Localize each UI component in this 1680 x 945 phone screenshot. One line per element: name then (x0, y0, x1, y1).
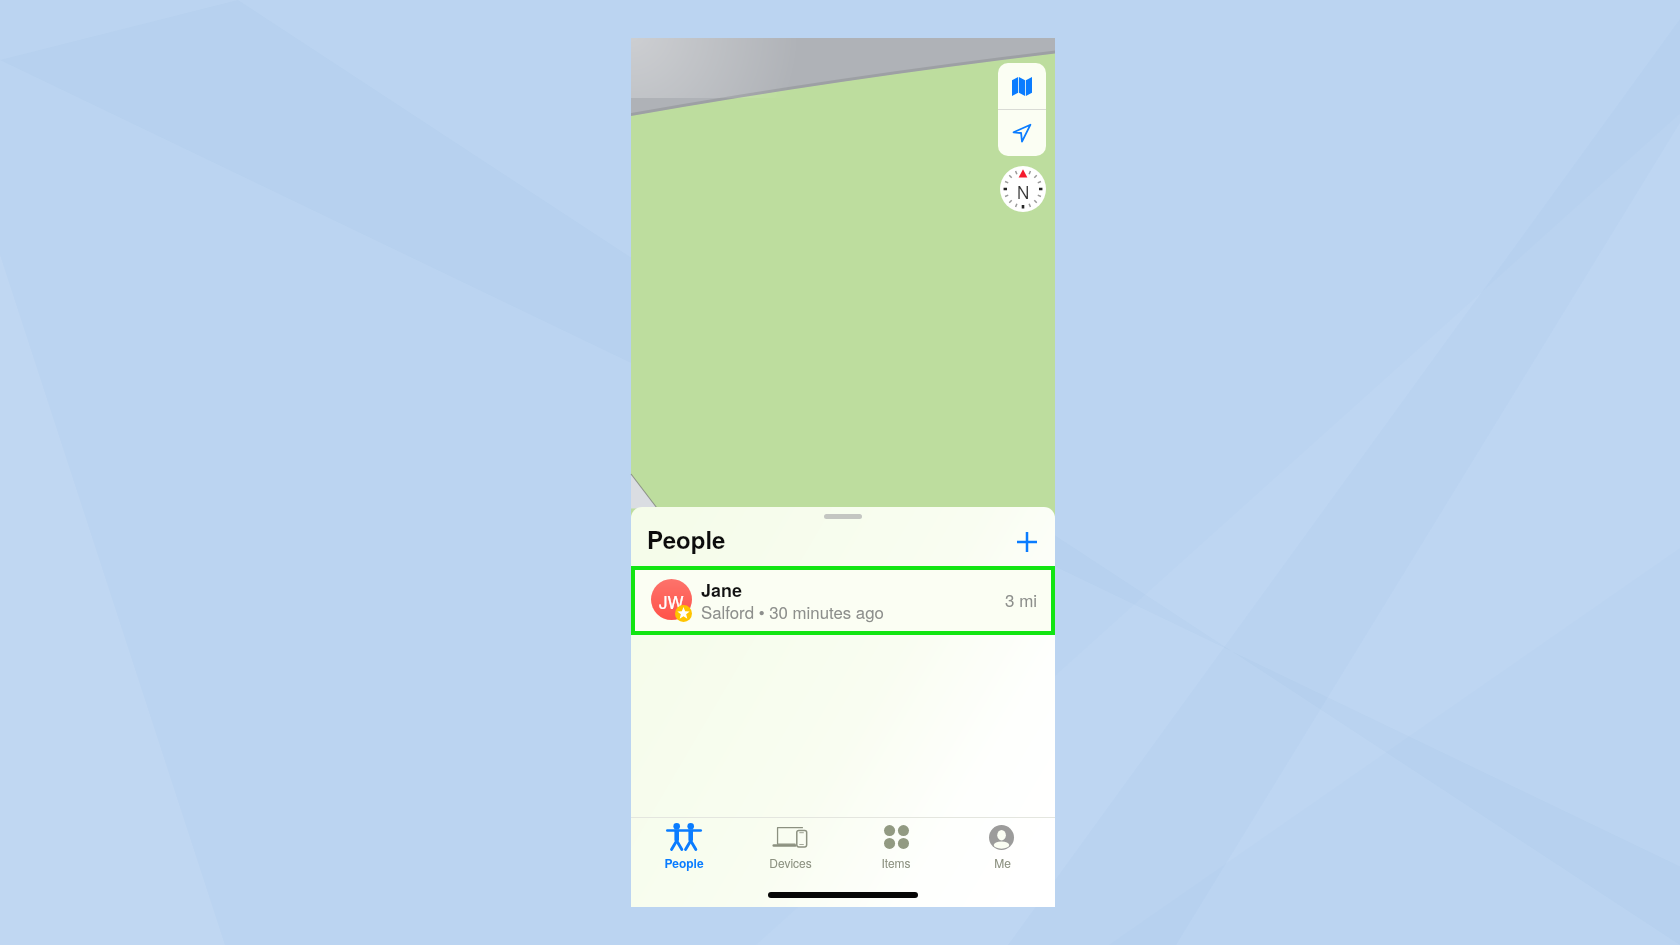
staticText: Me (994, 854, 1011, 871)
staticText: Items (881, 854, 911, 871)
button[interactable]: Add person (1009, 524, 1045, 560)
button[interactable]: JW (635, 570, 1051, 631)
button[interactable]: Items (843, 818, 949, 873)
staticText: People (664, 854, 704, 871)
button[interactable]: People (631, 818, 737, 873)
staticText: Jane (701, 577, 743, 603)
button[interactable]: Center on my location (998, 110, 1046, 156)
button[interactable]: Compass, north up (1000, 166, 1046, 212)
staticText: JW (659, 589, 684, 613)
button[interactable]: Devices (737, 818, 843, 873)
staticText: 3 mi (1005, 587, 1038, 611)
staticText: Salford • 30 minutes ago (701, 600, 884, 624)
button[interactable]: Map type (998, 63, 1046, 109)
staticText: Devices (769, 854, 812, 871)
button[interactable]: Me (949, 818, 1055, 873)
staticText: People (647, 522, 726, 556)
staticText: N (1017, 179, 1030, 203)
